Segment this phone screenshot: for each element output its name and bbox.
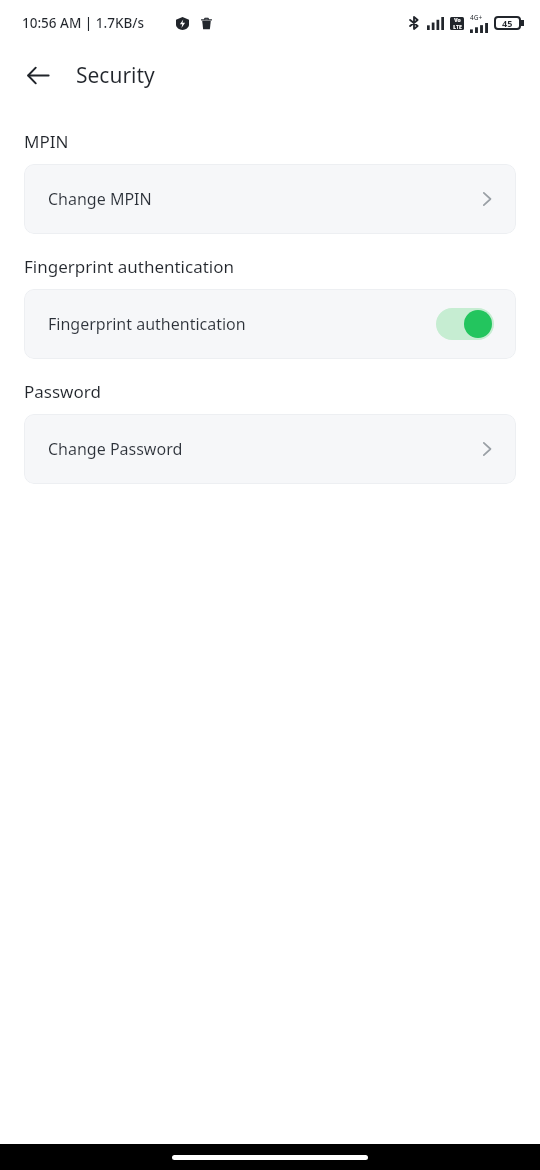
staticText: Vo <box>454 17 461 24</box>
staticText: Change Password <box>48 438 183 460</box>
staticText: Change MPIN <box>48 188 152 210</box>
staticText: LTE <box>453 24 462 30</box>
staticText: 45 <box>502 17 513 29</box>
button[interactable]: Back <box>14 51 62 99</box>
staticText: Security <box>76 61 155 90</box>
button[interactable]: Change MPIN <box>24 164 516 234</box>
staticText: MPIN <box>24 130 69 153</box>
staticText: 10:56 AM | 1.7KB/s <box>22 14 144 32</box>
staticText: 4G+ <box>470 13 483 22</box>
button[interactable]: Fingerprint authentication toggle <box>436 308 494 340</box>
staticText: Fingerprint authentication <box>24 255 235 278</box>
staticText: Password <box>24 380 101 403</box>
button[interactable]: Change Password <box>24 414 516 484</box>
staticText: Fingerprint authentication <box>48 313 246 335</box>
